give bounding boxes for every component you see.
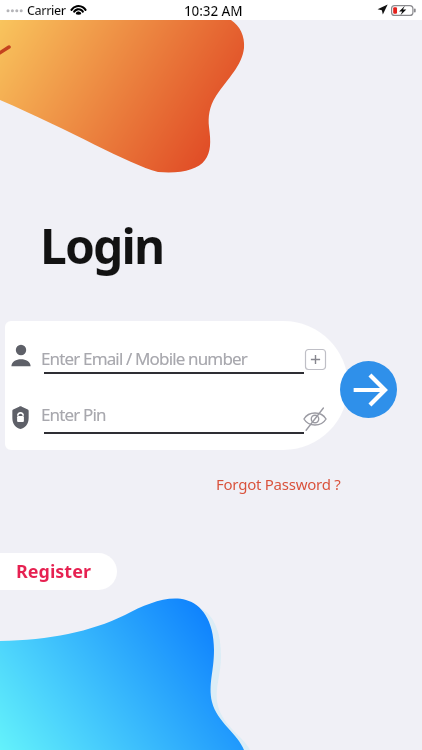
staticText: 10:32 AM [184, 2, 243, 20]
staticText: Register [16, 559, 91, 584]
staticText: Enter Pin [41, 403, 106, 426]
button[interactable]: Enter Pin [9, 401, 309, 437]
button[interactable]: Register [0, 553, 117, 590]
button[interactable]: Show pin [303, 409, 327, 429]
button[interactable]: Enter Email / Mobile number [9, 341, 309, 377]
button[interactable]: Sign in [340, 361, 397, 418]
staticText: Carrier [27, 2, 66, 19]
staticText: Enter Email / Mobile number [41, 347, 247, 370]
button[interactable]: Add contact [305, 349, 326, 369]
staticText: Login [40, 213, 164, 278]
button[interactable]: Forgot Password ? [216, 474, 341, 494]
staticText: Forgot Password ? [216, 474, 341, 494]
